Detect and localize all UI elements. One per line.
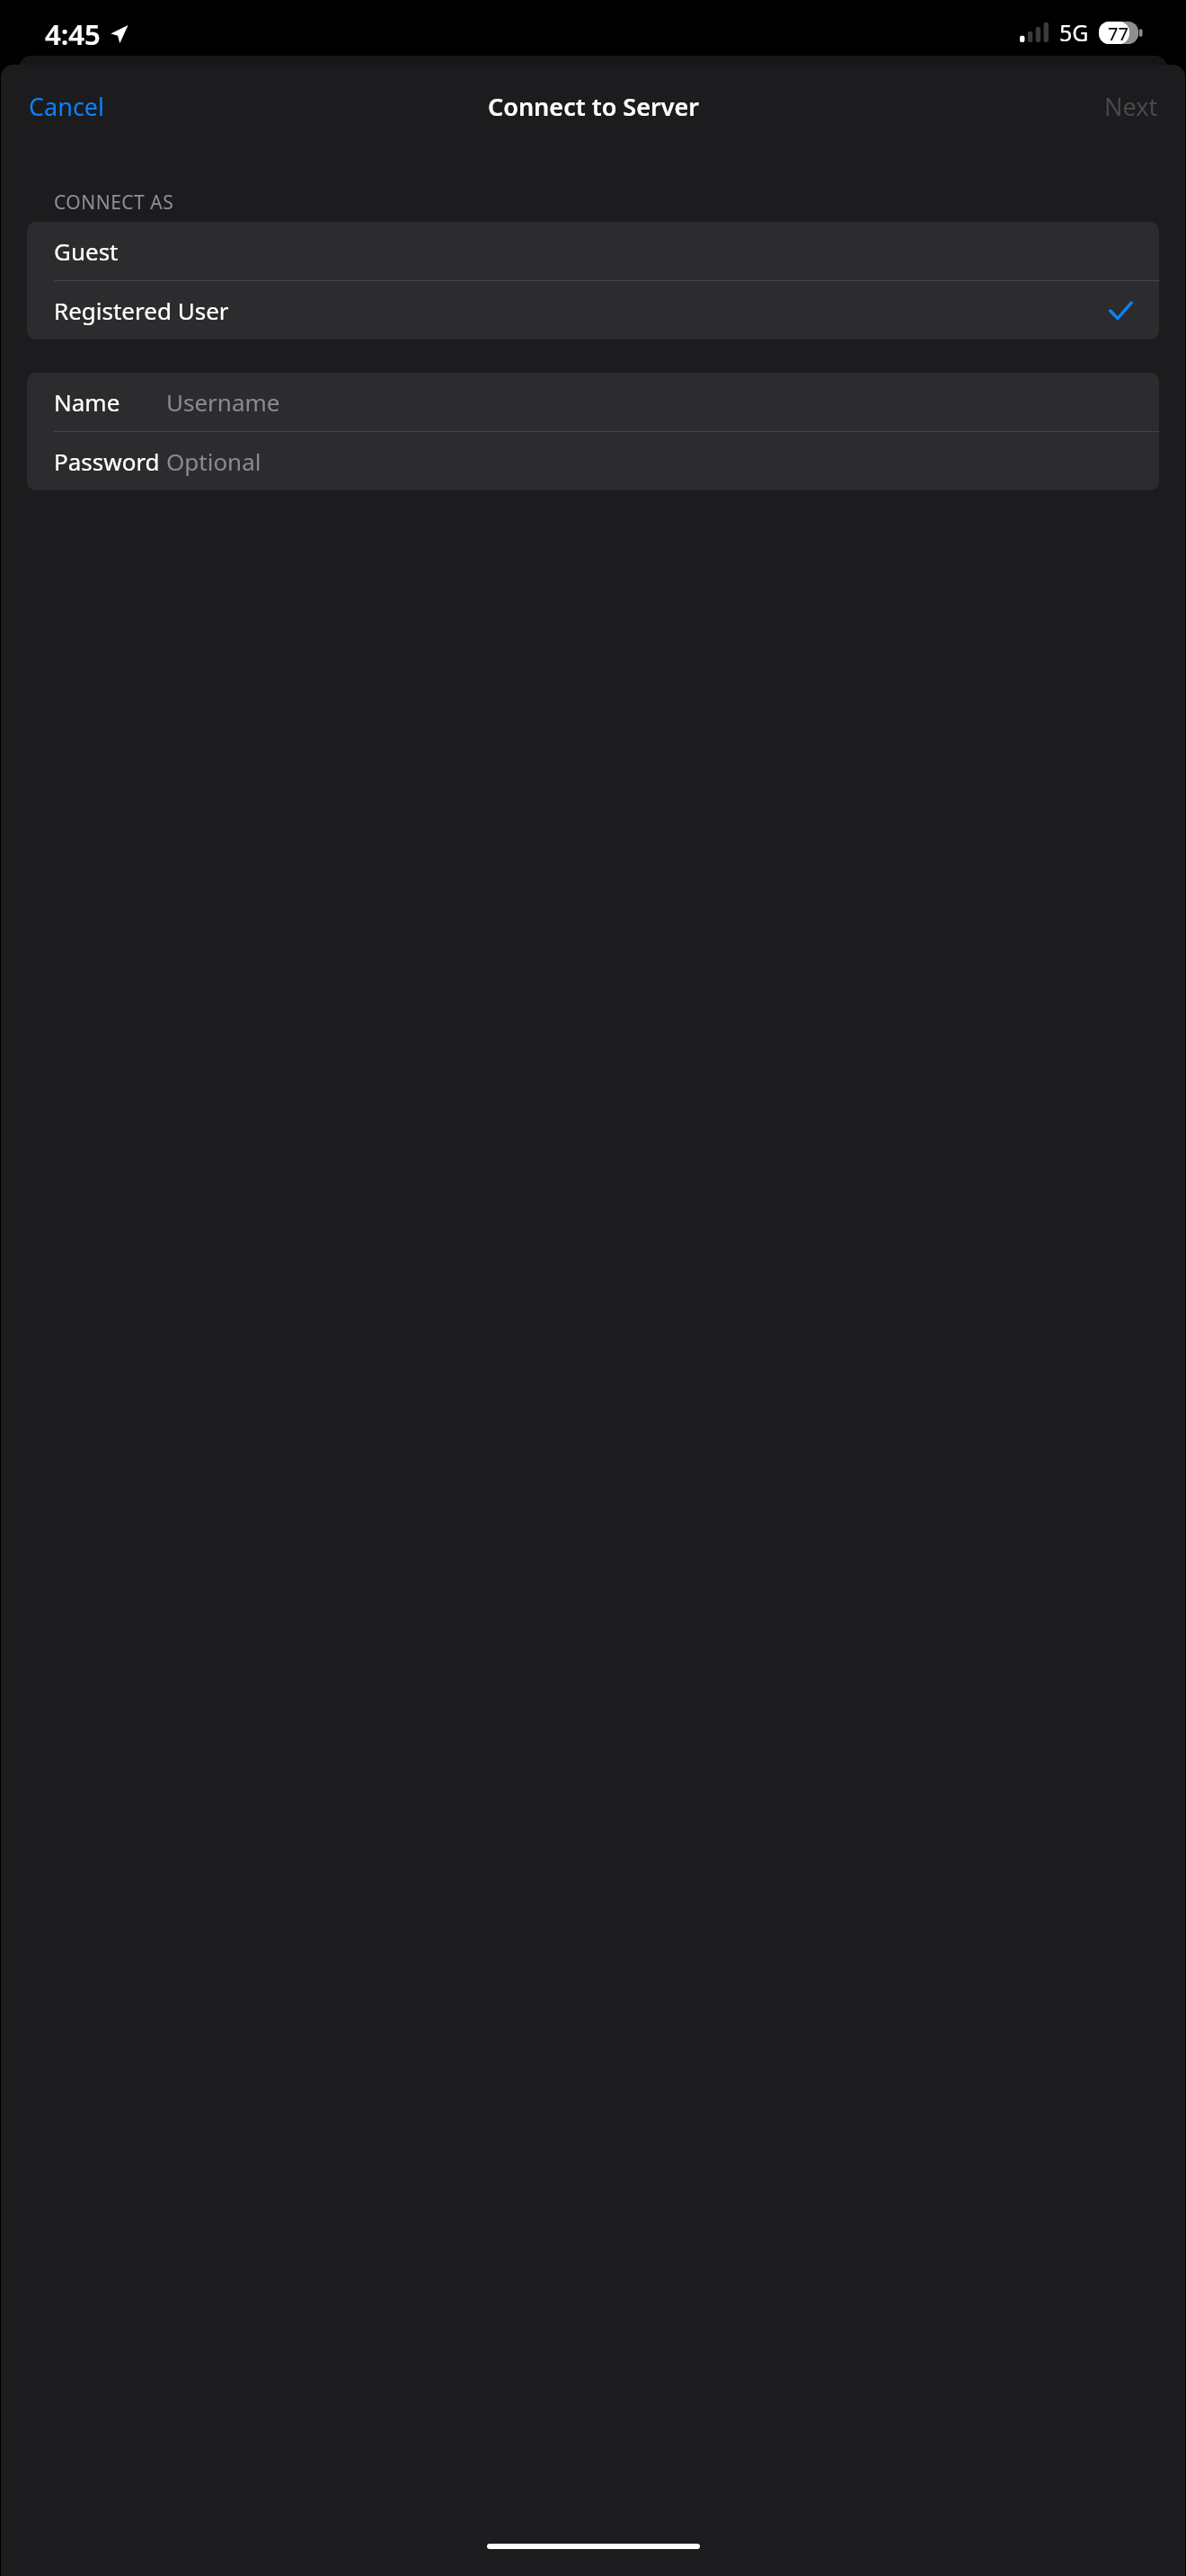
button[interactable]: Name [27,373,1159,431]
button[interactable]: Password [27,432,1159,490]
staticText: Name [54,386,120,418]
staticText: 5G [1059,17,1089,48]
staticText: Registered User [54,295,229,326]
staticText: Password [54,446,160,477]
staticText: 77 [1108,22,1128,44]
button[interactable]: Next [1092,83,1185,130]
button[interactable]: Registered User [27,281,1159,340]
staticText: Next [1104,90,1158,123]
staticText: CONNECT AS [54,190,174,216]
staticText: Username [166,386,280,418]
staticText: Optional [166,446,261,477]
button[interactable]: Guest [27,222,1159,280]
staticText: 4:45 [45,15,101,53]
staticText: Guest [54,235,119,267]
staticText: Connect to Server [488,90,699,123]
staticText: Cancel [29,90,105,123]
button[interactable]: Cancel [1,83,118,130]
